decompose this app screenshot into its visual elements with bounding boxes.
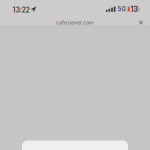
staticText: 13 (130, 5, 137, 13)
staticText: cafe.naver.com (56, 19, 94, 26)
staticText: 5G (118, 6, 126, 13)
button[interactable]: Stop loading (137, 18, 145, 26)
staticText: 13:22 (12, 6, 29, 14)
